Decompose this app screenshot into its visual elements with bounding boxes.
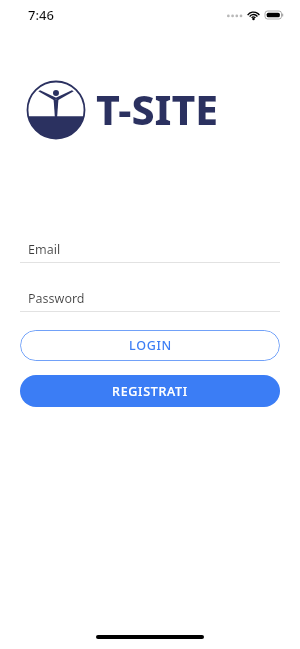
staticText: REGISTRATI [112, 383, 188, 400]
button[interactable]: LOGIN [20, 330, 280, 361]
staticText: Email [28, 241, 61, 258]
button[interactable]: REGISTRATI [20, 375, 280, 407]
button[interactable]: Password [20, 285, 280, 312]
staticText: Password [28, 290, 85, 307]
staticText: T-SITE [96, 81, 219, 137]
staticText: LOGIN [129, 337, 172, 354]
staticText: 7:46 [28, 6, 54, 24]
button[interactable]: Email [20, 236, 280, 263]
